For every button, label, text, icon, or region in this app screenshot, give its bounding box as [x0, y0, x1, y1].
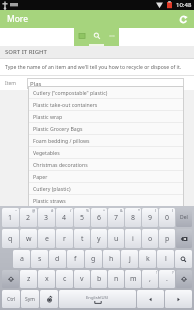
- button[interactable]: f: [67, 250, 84, 268]
- button[interactable]: 4: [56, 208, 73, 227]
- button[interactable]: Vegetables: [29, 147, 183, 158]
- staticText: 5: [80, 213, 85, 223]
- button[interactable]: n: [108, 270, 124, 288]
- button[interactable]: l: [157, 250, 174, 268]
- staticText: Cutlery (plastic): [33, 185, 71, 192]
- button[interactable]: 6: [91, 208, 107, 227]
- staticText: *: [138, 208, 140, 213]
- button[interactable]: Left: [137, 290, 164, 308]
- button[interactable]: c: [56, 270, 73, 288]
- staticText: r: [63, 234, 66, 244]
- button[interactable]: q: [2, 229, 19, 248]
- button[interactable]: h: [103, 250, 120, 268]
- button[interactable]: w: [20, 229, 37, 248]
- button[interactable]: t: [74, 229, 90, 248]
- staticText: i: [132, 234, 134, 244]
- button[interactable]: 8: [125, 208, 141, 227]
- button[interactable]: .: [159, 270, 175, 288]
- button[interactable]: 2: [20, 208, 37, 227]
- button[interactable]: Plastic Grocery Bags: [29, 123, 183, 134]
- button[interactable]: e: [38, 229, 55, 248]
- staticText: .: [166, 274, 168, 284]
- button[interactable]: Search tab: [89, 28, 104, 46]
- staticText: k: [146, 254, 150, 264]
- button[interactable]: More options tab: [104, 28, 119, 46]
- button[interactable]: y: [91, 229, 107, 248]
- staticText: Sym: [25, 296, 35, 303]
- staticText: Plastic take-out containers: [33, 101, 98, 108]
- staticText: Vegetables: [33, 149, 60, 156]
- button[interactable]: Del: [176, 208, 192, 227]
- button[interactable]: 1: [2, 208, 19, 227]
- button[interactable]: 0: [159, 208, 175, 227]
- button[interactable]: Foam bedding / pillows: [29, 135, 183, 146]
- button[interactable]: Plas: [27, 78, 184, 89]
- staticText: Foam bedding / pillows: [33, 137, 90, 144]
- staticText: Christmas decorations: [33, 161, 88, 168]
- staticText: u: [114, 234, 119, 244]
- staticText: y: [97, 234, 101, 244]
- staticText: &: [120, 208, 123, 213]
- button[interactable]: m: [125, 270, 141, 288]
- staticText: Plastic straws: [33, 197, 66, 204]
- button[interactable]: i: [125, 229, 141, 248]
- button[interactable]: Sym: [21, 290, 39, 308]
- button[interactable]: Christmas decorations: [29, 159, 183, 170]
- button[interactable]: Cutlery (plastic): [29, 183, 183, 194]
- button[interactable]: z: [20, 270, 37, 288]
- button[interactable]: Paper: [29, 171, 183, 182]
- button[interactable]: r: [56, 229, 73, 248]
- button[interactable]: s: [31, 250, 48, 268]
- button[interactable]: Right: [165, 290, 192, 308]
- button[interactable]: Backspace: [176, 229, 192, 248]
- staticText: Item: [5, 80, 27, 87]
- button[interactable]: d: [49, 250, 66, 268]
- staticText: ,: [149, 274, 151, 284]
- button[interactable]: j: [121, 250, 138, 268]
- button[interactable]: ,: [142, 270, 158, 288]
- button[interactable]: Plastic wrap: [29, 111, 183, 122]
- button[interactable]: Input settings: [40, 290, 58, 308]
- staticText: /: [70, 208, 72, 213]
- button[interactable]: k: [139, 250, 156, 268]
- button[interactable]: Shift: [176, 270, 192, 288]
- button[interactable]: 3: [38, 208, 55, 227]
- staticText: #: [51, 208, 54, 213]
- button[interactable]: a: [13, 250, 30, 268]
- button[interactable]: 7: [108, 208, 124, 227]
- button[interactable]: Ctrl: [2, 290, 20, 308]
- staticText: 9: [148, 213, 153, 223]
- button[interactable]: g: [85, 250, 102, 268]
- button[interactable]: Plastic straws: [29, 195, 183, 206]
- button[interactable]: b: [91, 270, 107, 288]
- button[interactable]: Plastic take-out containers: [29, 99, 183, 110]
- button[interactable]: u: [108, 229, 124, 248]
- button[interactable]: Shift: [2, 270, 19, 288]
- staticText: ?: [172, 270, 174, 275]
- staticText: v: [80, 274, 84, 284]
- button[interactable]: Cutlery ("compostable" plastic): [29, 87, 183, 98]
- button[interactable]: 9: [142, 208, 158, 227]
- staticText: 8: [131, 213, 136, 223]
- staticText: 4: [62, 213, 67, 223]
- staticText: Ctrl: [7, 296, 16, 303]
- button[interactable]: v: [74, 270, 90, 288]
- button[interactable]: English(US): [59, 290, 136, 308]
- staticText: j: [129, 254, 131, 264]
- button[interactable]: o: [142, 229, 158, 248]
- staticText: b: [97, 274, 102, 284]
- button[interactable]: p: [159, 229, 175, 248]
- staticText: Del: [180, 214, 188, 221]
- button[interactable]: 5: [74, 208, 90, 227]
- staticText: Paper: [33, 173, 48, 180]
- staticText: More: [7, 13, 28, 25]
- staticText: ): [172, 208, 174, 213]
- button[interactable]: Refresh: [176, 12, 190, 26]
- staticText: q: [8, 234, 13, 244]
- button[interactable]: List tab: [74, 28, 89, 46]
- button[interactable]: x: [38, 270, 55, 288]
- staticText: Plastic wrap: [33, 113, 63, 120]
- staticText: 2: [26, 213, 31, 223]
- staticText: d: [55, 254, 60, 264]
- button[interactable]: Search: [175, 250, 192, 268]
